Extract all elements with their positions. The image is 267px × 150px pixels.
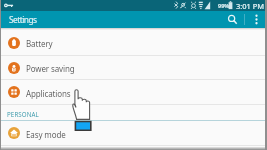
staticText: Easy mode bbox=[26, 129, 66, 140]
staticText: 99% bbox=[218, 2, 230, 9]
staticText: Settings bbox=[9, 14, 37, 25]
staticText: 3:01 PM bbox=[236, 1, 265, 11]
button[interactable]: Search bbox=[220, 11, 244, 28]
staticText: Battery bbox=[26, 38, 53, 49]
staticText: Power saving bbox=[26, 63, 75, 74]
button[interactable]: Battery bbox=[0, 30, 267, 55]
button[interactable]: More options bbox=[245, 11, 267, 28]
staticText: PERSONAL bbox=[7, 110, 39, 118]
button[interactable]: Easy mode bbox=[0, 121, 267, 145]
button[interactable]: Power saving bbox=[0, 56, 267, 79]
button[interactable]: Applications bbox=[0, 80, 267, 104]
staticText: Applications bbox=[26, 88, 71, 99]
